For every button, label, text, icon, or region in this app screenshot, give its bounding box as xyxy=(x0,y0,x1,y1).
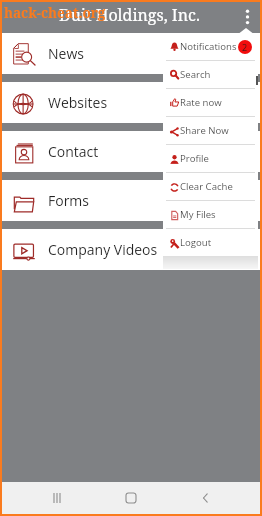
button[interactable]: Rate now xyxy=(163,89,258,116)
staticText: Logout xyxy=(180,236,212,249)
staticText: Websites xyxy=(48,93,108,112)
button[interactable]: Recents xyxy=(37,482,77,514)
staticText: My Files xyxy=(180,208,216,221)
button[interactable]: Profile xyxy=(163,145,258,172)
button[interactable]: Search xyxy=(163,61,258,88)
button[interactable]: Share Now xyxy=(163,117,258,144)
button[interactable]: Websites xyxy=(2,82,260,123)
staticText: hack-cheat.org xyxy=(4,4,106,22)
staticText: News xyxy=(48,44,84,63)
button[interactable]: Forms xyxy=(2,180,260,221)
staticText: Notifications xyxy=(180,40,237,53)
staticText: Rate now xyxy=(180,96,222,109)
button[interactable]: Notifications xyxy=(163,33,258,60)
staticText: 2 xyxy=(242,41,248,53)
button[interactable]: Logout xyxy=(163,229,258,256)
staticText: Profile xyxy=(180,152,209,165)
staticText: Company Videos xyxy=(48,240,158,259)
button[interactable]: Company Videos xyxy=(2,229,260,270)
button[interactable]: My Files xyxy=(163,201,258,228)
button[interactable]: Home xyxy=(111,482,151,514)
staticText: Duit Holdings, Inc. xyxy=(59,4,200,26)
staticText: Search xyxy=(180,68,211,81)
staticText: Contact xyxy=(48,142,99,161)
staticText: Forms xyxy=(48,191,90,210)
button[interactable]: Back xyxy=(186,482,226,514)
staticText: Share Now xyxy=(180,124,229,137)
staticText: Clear Cache xyxy=(180,180,233,193)
button[interactable]: More options xyxy=(233,2,260,33)
button[interactable]: Clear Cache xyxy=(163,173,258,200)
button[interactable]: News xyxy=(2,33,260,74)
button[interactable]: Contact xyxy=(2,131,260,172)
